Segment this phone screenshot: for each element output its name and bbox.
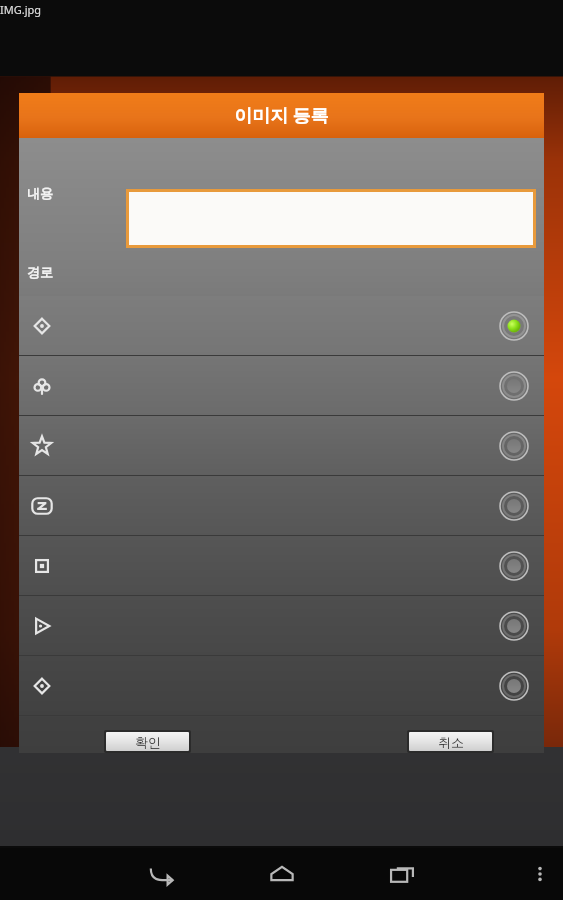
staticText: 경로 [27,264,53,280]
staticText: 내용 [27,185,53,201]
button[interactable]: Option 4 [19,476,544,536]
button[interactable]: Option 2 [19,356,544,416]
button[interactable]: Option 7 [19,656,544,716]
button[interactable]: 취소 [409,732,492,751]
staticText: IMG.jpg [0,2,42,17]
button[interactable]: Option 6 [19,596,544,656]
button[interactable]: Back [102,848,222,900]
button[interactable]: Option 1 [19,296,544,356]
button[interactable]: Home [222,848,342,900]
button[interactable]: More options [517,848,563,900]
staticText: 확인 [135,734,161,750]
button[interactable]: Option 3 [19,416,544,476]
button[interactable]: Option 5 [19,536,544,596]
staticText: 이미지 등록 [234,103,329,128]
button[interactable]: 확인 [106,732,189,751]
staticText: 취소 [438,734,464,750]
button[interactable]: Recent apps [342,848,462,900]
